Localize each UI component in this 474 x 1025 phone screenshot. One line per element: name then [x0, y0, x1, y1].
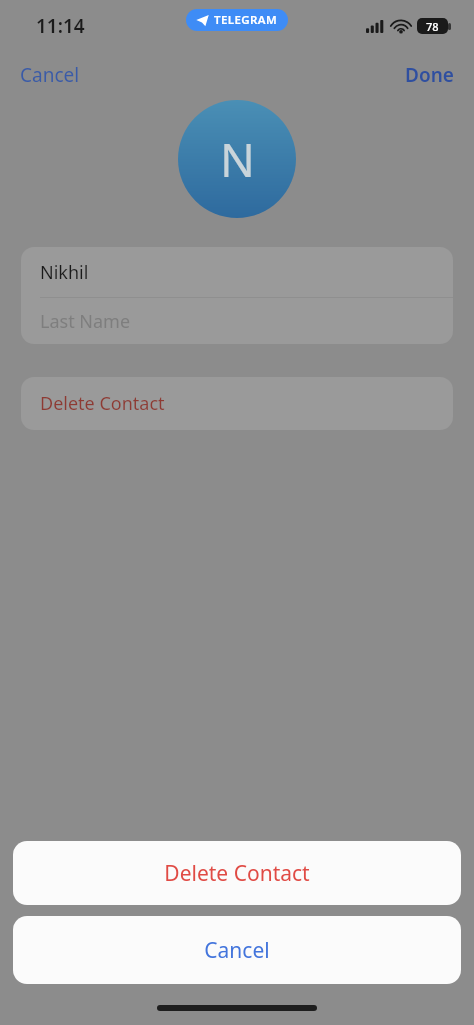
staticText: 11:14 — [36, 13, 85, 39]
button[interactable]: Change profile photo — [178, 100, 296, 218]
staticText: TELEGRAM — [214, 12, 278, 28]
button[interactable]: Delete Contact — [21, 377, 453, 430]
staticText: Cancel — [204, 936, 270, 965]
staticText: Nikhil — [40, 260, 89, 285]
staticText: Done — [405, 62, 454, 88]
staticText: Cancel — [20, 62, 80, 88]
button[interactable]: Nikhil — [21, 247, 453, 297]
button[interactable]: Last Name — [21, 298, 453, 344]
staticText: N — [220, 128, 255, 191]
button[interactable]: TELEGRAM — [186, 9, 288, 31]
button[interactable]: Cancel — [0, 56, 94, 94]
button[interactable]: Done — [391, 56, 474, 94]
button[interactable]: Cancel — [13, 916, 461, 984]
staticText: Delete Contact — [164, 859, 310, 888]
button[interactable]: Delete Contact — [13, 841, 461, 905]
staticText: 78 — [426, 19, 439, 34]
staticText: Delete Contact — [40, 391, 165, 416]
staticText: Last Name — [40, 309, 131, 334]
